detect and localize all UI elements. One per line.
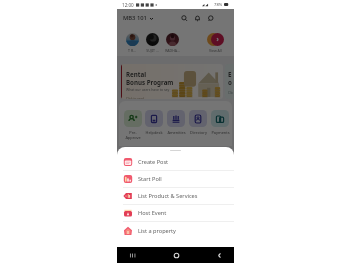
button[interactable]: Home (170, 249, 182, 261)
staticText: 12:00 (122, 2, 134, 8)
button[interactable]: View All (203, 33, 227, 53)
button[interactable]: Search (178, 12, 191, 25)
staticText: MB3 101 (123, 14, 147, 22)
staticText: Host Event (138, 209, 167, 217)
staticText: List a property (138, 227, 176, 235)
staticText: 78% (214, 2, 223, 8)
button[interactable]: T R... (122, 33, 142, 53)
button[interactable]: List Product & Services (117, 188, 234, 204)
button[interactable]: MB3 101 (123, 14, 154, 22)
button[interactable]: Helpdesk (143, 110, 165, 135)
button[interactable]: List a property (117, 222, 234, 239)
staticText: T R... (128, 48, 136, 53)
staticText: Rental (126, 70, 147, 78)
button[interactable]: Notifications (191, 12, 204, 25)
staticText: Pre- Approve (125, 130, 141, 140)
staticText: Bonus Program (126, 78, 174, 86)
button[interactable]: Ex (225, 64, 234, 99)
staticText: Create Post (138, 158, 169, 166)
staticText: Start Poll (138, 175, 162, 183)
staticText: What our users have to say (126, 87, 170, 92)
staticText: or (228, 78, 234, 86)
staticText: Amenities (167, 130, 186, 135)
staticText: Directory (190, 130, 207, 135)
staticText: Ex (228, 70, 234, 78)
staticText: Payments (211, 130, 230, 135)
button[interactable]: SUJIT ... (142, 33, 162, 53)
staticText: List Product & Services (138, 192, 198, 200)
staticText: SUJIT ... (146, 48, 159, 53)
button[interactable]: Host Event (117, 205, 234, 221)
button[interactable]: Back (213, 249, 225, 261)
staticText: Click to read (126, 97, 144, 99)
button[interactable]: Recents (126, 249, 138, 261)
button[interactable]: Pre- Approve (122, 110, 143, 140)
button[interactable]: RADHA... (162, 33, 182, 53)
button[interactable]: Messages (204, 12, 217, 25)
staticText: RADHA... (165, 48, 180, 53)
staticText: Helpdesk (145, 130, 163, 135)
staticText: View All (209, 48, 222, 53)
staticText: Clic (228, 91, 234, 95)
button[interactable]: Create Post (117, 154, 234, 170)
button[interactable]: Rental (121, 64, 223, 99)
button[interactable]: Start Poll (117, 171, 234, 187)
button[interactable]: Directory (187, 110, 209, 135)
button[interactable]: Amenities (165, 110, 187, 135)
button[interactable]: Payments (209, 110, 231, 135)
